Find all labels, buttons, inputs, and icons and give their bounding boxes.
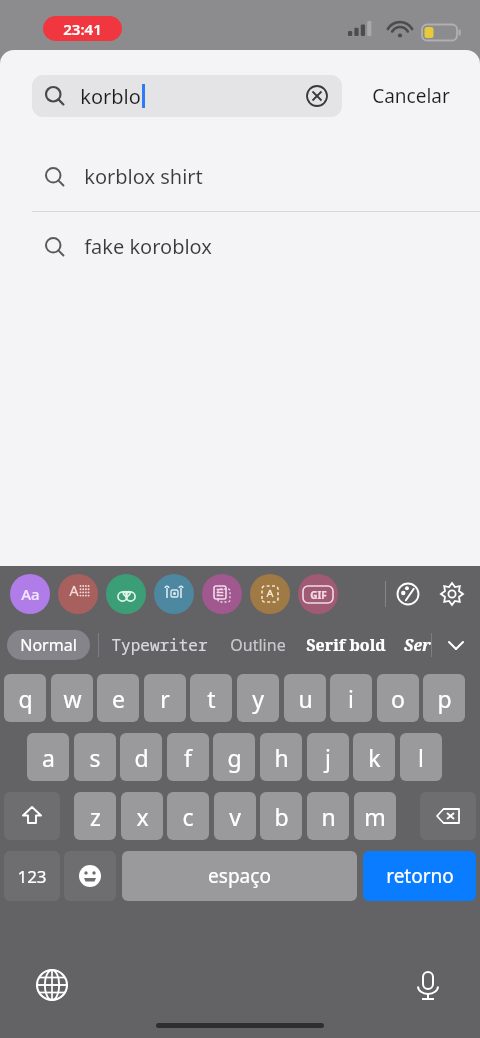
staticText: v [229,801,241,832]
button[interactable]: korblo [32,75,342,117]
button[interactable]: korblox shirt [0,142,480,211]
button[interactable]: Clear text [304,83,330,109]
staticText: p [437,683,452,714]
staticText: z [90,801,101,832]
button[interactable]: k [353,733,395,781]
button[interactable]: m [354,792,396,840]
button[interactable]: Serif bold [296,634,396,656]
button[interactable]: c [167,792,209,840]
button[interactable]: r [144,674,186,722]
staticText: espaço [208,863,271,889]
button[interactable]: Typewriter [99,634,220,656]
button[interactable]: Dictation [404,961,452,1009]
button[interactable]: g [213,733,255,781]
button[interactable]: Keyboard tool 4 [154,574,194,614]
staticText: d [134,742,149,773]
staticText: a [42,742,55,773]
button[interactable]: Emoji [64,851,116,901]
button[interactable]: Keyboard tool 7 [298,574,338,614]
staticText: f [184,742,192,773]
staticText: korblo [80,83,141,110]
button[interactable]: espaço [122,851,357,901]
staticText: Normal [20,634,77,656]
button[interactable]: d [120,733,162,781]
button[interactable]: Keyboard tool 1 [10,574,50,614]
staticText: l [418,742,424,773]
button[interactable]: More styles [432,622,480,668]
button[interactable]: Normal [7,630,90,660]
staticText: h [274,742,289,773]
button[interactable]: f [167,733,209,781]
button[interactable]: Ser [396,634,431,656]
button[interactable]: o [377,674,419,722]
staticText: g [227,742,242,773]
button[interactable]: b [260,792,302,840]
button[interactable]: Keyboard settings [430,572,474,616]
staticText: retorno [386,863,454,889]
button[interactable]: h [260,733,302,781]
staticText: k [368,742,381,773]
button[interactable]: 123 [4,851,60,901]
staticText: t [207,683,216,714]
button[interactable]: n [307,792,349,840]
staticText: w [63,683,82,714]
staticText: Serif bold [306,634,386,656]
staticText: q [18,683,33,714]
staticText: y [252,683,264,714]
button[interactable]: a [27,733,69,781]
button[interactable]: retorno [363,851,476,901]
button[interactable]: v [214,792,256,840]
button[interactable]: j [307,733,349,781]
button[interactable]: Keyboard tool 6 [250,574,290,614]
button[interactable]: z [74,792,116,840]
staticText: e [112,683,125,714]
staticText: Aa [21,584,40,604]
staticText: s [89,742,101,773]
button[interactable]: Theme [386,572,430,616]
button[interactable]: e [97,674,139,722]
staticText: m [364,801,386,832]
staticText: j [325,742,331,773]
button[interactable]: Outline [220,634,296,656]
staticText: 23:41 [63,19,102,39]
button[interactable]: Cancelar [342,50,480,142]
staticText: Typewriter [111,634,208,656]
button[interactable]: i [330,674,372,722]
button[interactable]: l [400,733,442,781]
button[interactable]: Keyboard tool 2 [58,574,98,614]
button[interactable]: u [284,674,326,722]
staticText: c [182,801,194,832]
button[interactable]: q [4,674,46,722]
button[interactable]: Change keyboard language [28,961,76,1009]
button[interactable]: Shift [4,792,60,840]
button[interactable]: x [121,792,163,840]
button[interactable]: w [51,674,93,722]
staticText: Outline [230,634,286,656]
button[interactable]: p [423,674,465,722]
staticText: o [391,683,405,714]
button[interactable]: Keyboard tool 5 [202,574,242,614]
button[interactable]: Backspace [420,792,476,840]
staticText: n [321,801,336,832]
staticText: r [160,683,170,714]
button[interactable]: fake koroblox [0,212,480,281]
button[interactable]: Keyboard tool 3 [106,574,146,614]
button[interactable]: y [237,674,279,722]
staticText: u [298,683,313,714]
staticText: i [348,683,354,714]
button[interactable]: t [190,674,232,722]
staticText: GIF [310,588,327,602]
staticText: Cancelar [372,83,450,109]
staticText: x [136,801,149,832]
staticText: Ser [404,634,431,656]
staticText: korblox shirt [84,163,203,190]
staticText: fake koroblox [84,233,212,260]
staticText: 123 [17,865,47,888]
button[interactable]: s [74,733,116,781]
staticText: b [274,801,289,832]
